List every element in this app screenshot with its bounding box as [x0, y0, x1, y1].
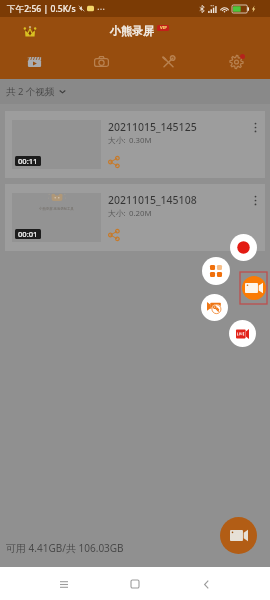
button[interactable]: Videos [0, 45, 67, 79]
staticText: 00:01 [18, 229, 38, 239]
staticText: 20211015_145108 [108, 193, 197, 207]
staticText: 00:11 [18, 156, 38, 166]
staticText: 0.20M [129, 208, 152, 219]
staticText: 0.30M [129, 135, 152, 146]
button[interactable]: 小熊录屏 高清录制工具 [5, 184, 265, 251]
button[interactable]: Tools [134, 45, 202, 79]
staticText: VIP [160, 25, 167, 31]
button[interactable]: Live stream [229, 320, 256, 347]
staticText: 下午2:56 | 0.5K/s [7, 3, 76, 15]
button[interactable]: Share [108, 156, 120, 168]
staticText: 可用 4.41GB/共 106.03GB [6, 541, 124, 554]
staticText: 共 2 个视频 [6, 85, 55, 98]
button[interactable]: Home [122, 571, 148, 597]
button[interactable]: Screen record [240, 272, 267, 304]
button[interactable]: 00:11 [5, 111, 265, 178]
button[interactable]: Back [193, 571, 219, 597]
button[interactable]: More options [247, 118, 263, 136]
button[interactable]: Share [108, 229, 120, 241]
staticText: 大小: [108, 135, 126, 146]
staticText: 小熊录屏 高清录制工具 [39, 206, 74, 211]
button[interactable]: Apps [202, 257, 230, 285]
staticText: 小熊录屏 [110, 24, 154, 38]
button[interactable]: Edit video [201, 294, 228, 321]
button[interactable]: 共 2 个视频 [0, 81, 72, 102]
button[interactable]: Recents [51, 571, 77, 597]
staticText: 大小: [108, 208, 126, 219]
button[interactable]: More options [247, 191, 263, 209]
button[interactable]: Record [230, 234, 257, 261]
button[interactable]: Camera [67, 45, 134, 79]
button[interactable]: New recording [220, 517, 257, 554]
button[interactable]: VIP [17, 18, 43, 44]
staticText: 20211015_145125 [108, 120, 197, 134]
button[interactable]: Settings [202, 45, 270, 79]
